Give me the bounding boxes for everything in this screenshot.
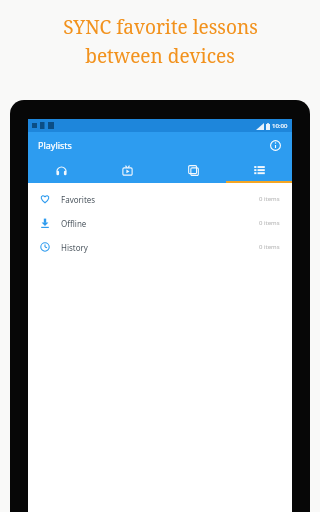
button[interactable]: Audio: [28, 157, 94, 183]
button[interactable]: History: [28, 235, 292, 259]
button[interactable]: Books: [160, 157, 226, 183]
button[interactable]: Favorites: [28, 187, 292, 211]
button[interactable]: Playlists: [226, 157, 292, 183]
button[interactable]: Video: [94, 157, 160, 183]
button[interactable]: Offline: [28, 211, 292, 235]
staticText: 0 items: [259, 219, 280, 227]
staticText: History: [61, 242, 88, 253]
staticText: 10:00: [272, 122, 288, 130]
staticText: 0 items: [259, 243, 280, 251]
staticText: Playlists: [38, 139, 72, 151]
staticText: SYNC favorite lessons: [63, 14, 258, 40]
staticText: between devices: [85, 43, 235, 69]
button[interactable]: Info: [266, 136, 284, 154]
staticText: 0 items: [259, 195, 280, 203]
staticText: Favorites: [61, 194, 96, 205]
staticText: Offline: [61, 218, 87, 229]
